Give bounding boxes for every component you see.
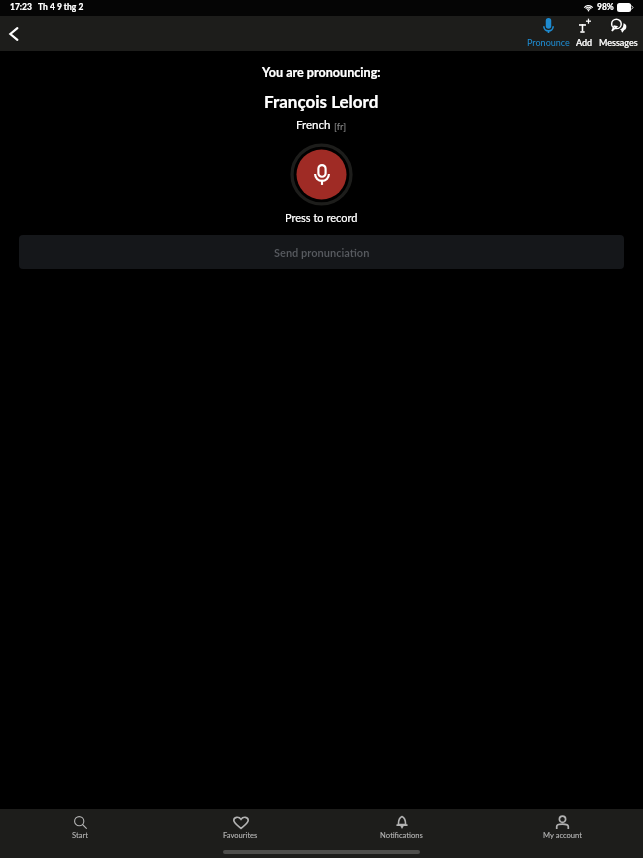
staticText: Notifications (380, 830, 423, 839)
staticText: French (296, 118, 331, 132)
button[interactable]: Notifications (354, 814, 449, 843)
staticText: My account (543, 830, 582, 839)
button[interactable]: Send pronunciation (19, 235, 624, 269)
staticText: Pronounce (527, 37, 570, 48)
button[interactable]: Pronounce (524, 18, 573, 51)
staticText: Favourites (223, 830, 258, 839)
staticText: Press to record (285, 211, 358, 224)
button[interactable]: Favourites (197, 814, 284, 843)
staticText: Start (72, 830, 88, 839)
staticText: 98% (597, 2, 614, 12)
button[interactable]: Back (0, 17, 34, 51)
staticText: Messages (599, 37, 638, 48)
staticText: [fr] (334, 121, 347, 132)
staticText: Send pronunciation (274, 246, 370, 259)
button[interactable]: Add (573, 18, 596, 51)
button[interactable]: My account (517, 814, 608, 843)
staticText: François Lelord (264, 91, 379, 111)
button[interactable]: Messages (596, 18, 641, 51)
staticText: You are pronouncing: (262, 65, 381, 80)
button[interactable]: Start (46, 814, 114, 843)
staticText: Th 4 9 thg 2 (38, 2, 84, 12)
staticText: Add (576, 37, 593, 48)
staticText: 17:23 (10, 2, 32, 12)
button[interactable]: Press to record (290, 143, 353, 206)
